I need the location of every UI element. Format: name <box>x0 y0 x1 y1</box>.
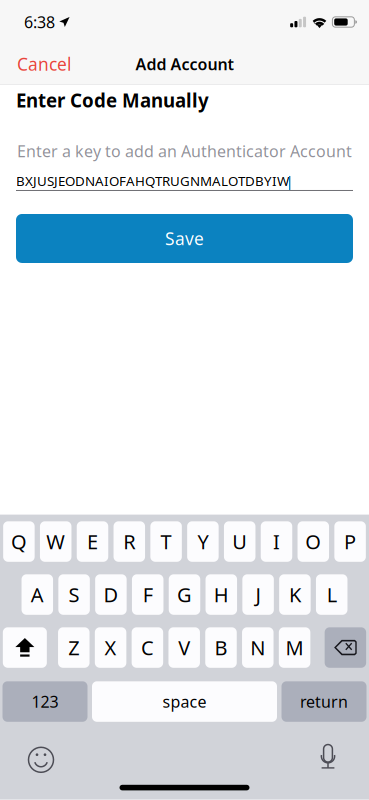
button[interactable]: G <box>169 574 200 615</box>
button[interactable]: U <box>224 521 255 562</box>
staticText: W <box>46 528 65 555</box>
button[interactable]: S <box>58 574 90 615</box>
staticText: 6:38 <box>24 11 55 33</box>
staticText: F <box>143 581 153 608</box>
staticText: X <box>105 634 117 661</box>
staticText: S <box>69 581 80 608</box>
staticText: T <box>161 528 172 555</box>
button[interactable]: Z <box>58 627 89 668</box>
button[interactable]: R <box>113 521 145 562</box>
staticText: return <box>300 691 348 712</box>
staticText: H <box>214 581 229 608</box>
button[interactable]: D <box>95 574 127 615</box>
staticText: N <box>250 634 265 661</box>
button[interactable]: E <box>77 521 108 562</box>
button[interactable]: B <box>205 627 237 668</box>
button[interactable]: Save <box>16 214 353 263</box>
button[interactable]: C <box>132 627 163 668</box>
staticText: G <box>177 581 192 608</box>
button[interactable]: Shift <box>3 627 47 668</box>
button[interactable]: return <box>281 681 366 722</box>
staticText: space <box>162 691 206 712</box>
staticText: 123 <box>31 691 58 712</box>
button[interactable]: V <box>168 627 200 668</box>
button[interactable]: T <box>150 521 182 562</box>
button[interactable]: A <box>22 574 53 615</box>
button[interactable]: N <box>242 627 274 668</box>
staticText: Cancel <box>17 52 71 76</box>
button[interactable]: 123 <box>2 681 87 722</box>
staticText: A <box>31 581 44 608</box>
button[interactable]: F <box>132 574 163 615</box>
staticText: Z <box>68 634 79 661</box>
button[interactable]: M <box>279 627 310 668</box>
button[interactable]: H <box>206 574 237 615</box>
staticText: I <box>273 528 280 555</box>
staticText: K <box>289 581 301 608</box>
button[interactable]: L <box>316 574 347 615</box>
staticText: Save <box>165 227 204 250</box>
staticText: J <box>256 581 261 608</box>
staticText: U <box>232 528 247 555</box>
staticText: C <box>141 634 154 661</box>
button[interactable]: space <box>92 681 277 722</box>
staticText: M <box>286 634 304 661</box>
staticText: B <box>214 634 227 661</box>
staticText: Y <box>197 528 208 555</box>
staticText: O <box>305 528 321 555</box>
button[interactable]: K <box>279 574 311 615</box>
staticText: V <box>178 634 190 661</box>
staticText: Add Account <box>135 53 233 75</box>
button[interactable]: P <box>334 521 366 562</box>
button[interactable]: Q <box>3 521 35 562</box>
button[interactable]: W <box>40 521 71 562</box>
button[interactable]: Y <box>187 521 219 562</box>
staticText: BXJUSJEODNAIOFAHQTRUGNMALOTDBYIW <box>16 172 289 190</box>
button[interactable]: J <box>242 574 274 615</box>
button[interactable]: Emoji keyboard <box>28 747 54 773</box>
button[interactable]: I <box>261 521 292 562</box>
button[interactable]: Delete <box>325 627 366 668</box>
button[interactable]: Cancel <box>0 44 83 84</box>
button[interactable]: O <box>298 521 329 562</box>
staticText: R <box>123 528 135 555</box>
button[interactable]: Dictation <box>319 746 337 774</box>
staticText: D <box>103 581 118 608</box>
staticText: P <box>344 528 356 555</box>
staticText: Q <box>11 528 27 555</box>
staticText: L <box>327 581 337 608</box>
button[interactable]: X <box>95 627 126 668</box>
staticText: Enter Code Manually <box>16 88 209 113</box>
staticText: E <box>87 528 98 555</box>
staticText: Enter a key to add an Authenticator Acco… <box>17 140 352 162</box>
